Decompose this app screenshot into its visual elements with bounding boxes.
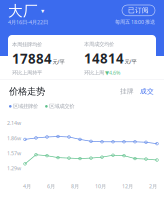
staticText: 1.29w — [7, 165, 21, 172]
button[interactable]: 大厂 — [8, 2, 44, 20]
staticText: 6月 — [47, 183, 55, 190]
staticText: 已订阅 — [128, 6, 149, 14]
staticText: 价格走势 — [9, 86, 45, 97]
staticText: 区域挂牌价 — [13, 103, 38, 110]
staticText: 大厂 — [8, 2, 38, 20]
staticText: 4月 — [23, 183, 31, 190]
staticText: 14814 — [84, 49, 124, 67]
staticText: 元/平 — [124, 58, 136, 65]
button[interactable]: 成交 — [137, 87, 157, 95]
staticText: 元/平 — [52, 58, 64, 65]
staticText: 2.14w — [7, 119, 21, 126]
staticText: 环比上周持平 — [12, 69, 42, 76]
staticText: 区域成交价 — [49, 103, 74, 110]
staticText: 17884 — [12, 50, 52, 67]
staticText: ▼4.6% — [105, 69, 120, 76]
staticText: 环比上周 — [84, 69, 104, 76]
button[interactable]: 已订阅 — [122, 5, 155, 16]
staticText: 挂牌 — [120, 87, 134, 95]
staticText: 2月 — [149, 183, 157, 190]
staticText: ▾ — [41, 7, 44, 15]
staticText: 成交 — [140, 87, 154, 95]
staticText: 10月 — [95, 183, 106, 190]
staticText: 8月 — [71, 183, 79, 190]
staticText: 4月16日-4月22日 — [8, 18, 48, 26]
staticText: 本周挂牌均价 — [12, 41, 42, 48]
staticText: 本周成交均价 — [84, 41, 114, 47]
staticText: 12月 — [122, 183, 133, 190]
staticText: 1.86w — [7, 134, 21, 142]
staticText: 1.57w — [7, 150, 21, 157]
button[interactable]: 挂牌 — [117, 87, 137, 95]
staticText: 每周五 18:00 推送 — [115, 18, 155, 25]
